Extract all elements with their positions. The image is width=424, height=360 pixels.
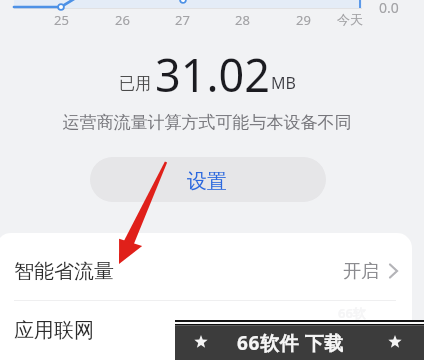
staticText: 设置 xyxy=(187,169,227,194)
staticText: 开启 xyxy=(343,260,379,283)
staticText: 66软件 下载 xyxy=(237,330,344,356)
staticText: 今天 xyxy=(337,11,363,27)
staticText: 智能省流量 xyxy=(14,259,114,284)
staticText: 0.0 xyxy=(379,0,399,17)
staticText: 66软 xyxy=(338,304,366,322)
staticText: 26 xyxy=(115,11,130,29)
staticText: 31.02 xyxy=(155,44,271,105)
staticText: 应用联网 xyxy=(14,318,94,343)
other: 66软件下载 xyxy=(175,320,424,360)
staticText: 25 xyxy=(54,11,69,29)
button[interactable]: 设置 xyxy=(90,157,326,202)
staticText: MB xyxy=(271,72,296,94)
staticText: 已用 xyxy=(119,74,151,94)
button[interactable]: 智能省流量 xyxy=(0,242,412,300)
staticText: 27 xyxy=(175,11,190,29)
staticText: 28 xyxy=(235,11,250,29)
button[interactable]: 应用联网 xyxy=(0,301,412,359)
staticText: 运营商流量计算方式可能与本设备不同 xyxy=(0,112,419,133)
staticText: 29 xyxy=(296,11,311,29)
